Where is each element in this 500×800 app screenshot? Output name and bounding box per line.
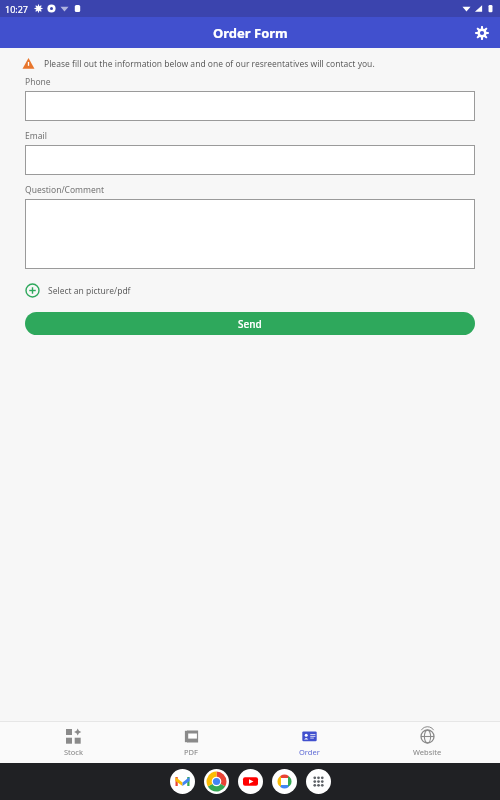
staticText: Phone bbox=[25, 76, 51, 88]
staticText: Order bbox=[299, 747, 320, 757]
button[interactable] bbox=[25, 91, 475, 121]
button[interactable]: App bbox=[238, 769, 263, 794]
button[interactable]: PDF bbox=[146, 722, 236, 763]
staticText: 10:27 bbox=[5, 3, 29, 15]
staticText: Send bbox=[238, 317, 262, 331]
button[interactable]: Settings bbox=[470, 21, 494, 45]
button[interactable]: App bbox=[272, 769, 297, 794]
staticText: Stock bbox=[64, 747, 83, 757]
button[interactable]: App bbox=[306, 769, 331, 794]
staticText: Email bbox=[25, 130, 47, 142]
staticText: Order Form bbox=[213, 24, 288, 42]
button[interactable]: Website bbox=[382, 722, 472, 763]
button[interactable] bbox=[25, 145, 475, 175]
button[interactable]: App bbox=[204, 769, 229, 794]
staticText: Question/Comment bbox=[25, 184, 105, 196]
staticText: Please fill out the information below an… bbox=[44, 58, 375, 70]
staticText: PDF bbox=[184, 747, 198, 757]
button[interactable]: Stock bbox=[28, 722, 118, 763]
button[interactable] bbox=[25, 199, 475, 269]
button[interactable]: Select an picture/pdf bbox=[25, 283, 131, 298]
staticText: Select an picture/pdf bbox=[48, 285, 131, 297]
button[interactable]: Order bbox=[264, 722, 354, 763]
staticText: Website bbox=[413, 747, 442, 757]
button[interactable]: Send bbox=[25, 312, 475, 335]
button[interactable]: App bbox=[170, 769, 195, 794]
